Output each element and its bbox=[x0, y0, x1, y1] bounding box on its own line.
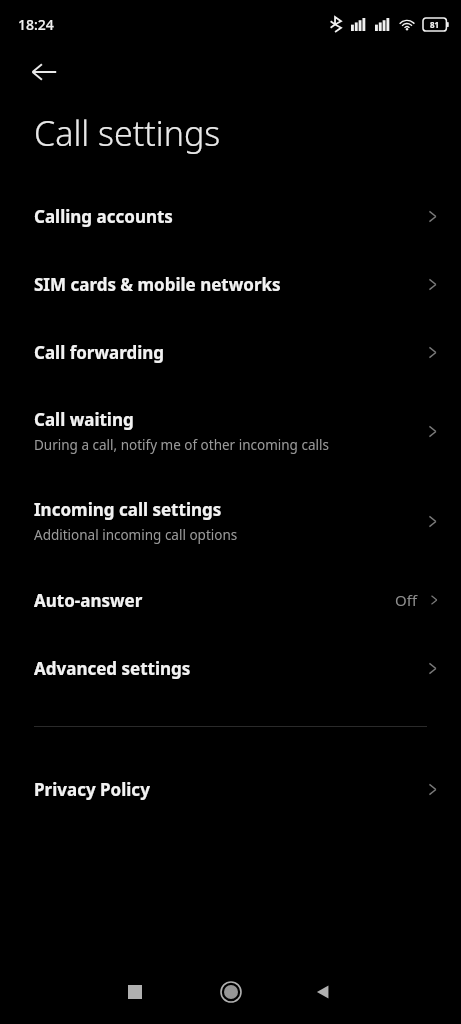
button[interactable]: Call forwarding bbox=[0, 318, 461, 386]
staticText: During a call, notify me of other incomi… bbox=[34, 436, 329, 454]
button[interactable]: Home bbox=[207, 968, 255, 1016]
button[interactable]: Privacy Policy bbox=[0, 755, 461, 823]
staticText: Privacy Policy bbox=[34, 778, 150, 801]
staticText: 81 bbox=[430, 19, 440, 30]
button[interactable]: Back bbox=[299, 968, 347, 1016]
button[interactable]: Incoming call settings bbox=[0, 476, 461, 566]
button[interactable]: Call waiting bbox=[0, 386, 461, 476]
staticText: Calling accounts bbox=[34, 205, 173, 228]
staticText: Additional incoming call options bbox=[34, 526, 238, 544]
staticText: Call settings bbox=[34, 110, 221, 156]
button[interactable]: Advanced settings bbox=[0, 634, 461, 702]
staticText: Call forwarding bbox=[34, 341, 165, 364]
button[interactable]: Auto-answer bbox=[0, 566, 461, 634]
staticText: Off bbox=[395, 590, 418, 610]
staticText: Incoming call settings bbox=[34, 498, 222, 521]
button[interactable]: SIM cards & mobile networks bbox=[0, 250, 461, 318]
button[interactable]: Calling accounts bbox=[0, 182, 461, 250]
staticText: SIM cards & mobile networks bbox=[34, 273, 281, 296]
button[interactable]: Recents bbox=[111, 968, 159, 1016]
staticText: 18:24 bbox=[18, 15, 54, 34]
staticText: Auto-answer bbox=[34, 589, 143, 612]
staticText: Call waiting bbox=[34, 408, 134, 431]
button[interactable]: Back bbox=[20, 48, 68, 96]
staticText: Advanced settings bbox=[34, 657, 191, 680]
